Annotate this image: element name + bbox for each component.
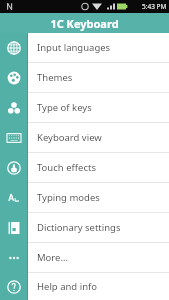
staticText: 1C Keyboard (50, 16, 119, 31)
button[interactable]: Help and info (0, 273, 169, 300)
other: Keyboard view (7, 131, 21, 145)
button[interactable]: More (0, 243, 169, 273)
staticText: More... (37, 251, 69, 264)
button[interactable]: Keyboard view (0, 123, 169, 153)
other: Touch effects (7, 161, 21, 175)
other: Dictionary settings (7, 221, 21, 235)
button[interactable]: Touch effects (0, 153, 169, 183)
button[interactable]: Typing modes (0, 183, 169, 213)
staticText: Type of keys (37, 101, 92, 114)
other: More (7, 251, 21, 265)
other: Help and info (7, 280, 21, 294)
button[interactable]: Input languages (0, 33, 169, 63)
staticText: Typing modes (37, 191, 100, 204)
button[interactable]: Dictionary settings (0, 213, 169, 243)
staticText: Themes (37, 71, 73, 84)
other: Themes (7, 71, 21, 85)
staticText: Dictionary settings (37, 221, 121, 234)
staticText: Help and info (37, 280, 98, 293)
other: Typing modes (7, 191, 21, 205)
other: Input languages (7, 41, 21, 55)
other: Type of keys (7, 101, 21, 115)
staticText: 5:43 PM (142, 2, 167, 11)
staticText: Keyboard view (37, 131, 102, 144)
button[interactable]: Type of keys (0, 93, 169, 123)
button[interactable]: Themes (0, 63, 169, 93)
staticText: Touch effects (37, 161, 96, 174)
staticText: Input languages (37, 41, 111, 54)
